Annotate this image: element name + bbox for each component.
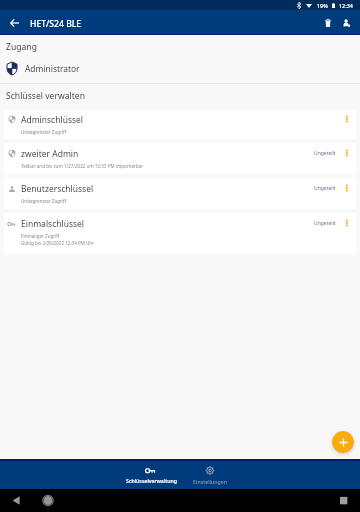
button[interactable]: More options xyxy=(341,183,351,193)
staticText: Ungeteilt xyxy=(314,185,336,192)
staticText: Unbegrenzter Zugriff xyxy=(21,129,67,135)
staticText: Teilbar und bis zum 1/27/2022 um 12:33 P… xyxy=(21,163,144,169)
staticText: Gültig bis 2/26/2022 12:34 PM Uhr xyxy=(21,240,95,246)
staticText: 19% xyxy=(317,2,328,9)
staticText: Ungeteilt xyxy=(314,150,336,157)
staticText: Einmalschlüssel xyxy=(21,218,85,230)
button[interactable]: More options xyxy=(341,148,351,158)
staticText: Schlüssel verwalten xyxy=(6,90,86,102)
button[interactable]: More options xyxy=(341,114,351,124)
button[interactable]: Delete xyxy=(318,12,337,34)
button[interactable]: Benutzerschlüssel xyxy=(4,178,356,209)
staticText: Adminschlüssel xyxy=(21,114,84,126)
button[interactable]: Account xyxy=(337,12,356,34)
staticText: Benutzerschlüssel xyxy=(21,183,94,195)
button[interactable]: Einstellungen xyxy=(189,461,231,489)
staticText: Ungeteilt xyxy=(314,220,336,227)
staticText: Schlüsselverwaltung xyxy=(126,477,177,484)
button[interactable]: zweiter Admin xyxy=(4,143,356,174)
button[interactable]: Administrator xyxy=(0,53,360,83)
button[interactable]: Adminschlüssel xyxy=(4,110,356,139)
staticText: Administrator xyxy=(25,63,80,74)
button[interactable]: Add key xyxy=(332,431,354,453)
staticText: HET/S24 BLE xyxy=(30,18,82,30)
staticText: 12:34 xyxy=(339,2,353,9)
staticText: Unbegrenzter Zugriff xyxy=(21,198,67,204)
button[interactable]: Einmalschlüssel xyxy=(4,213,356,254)
button[interactable]: More options xyxy=(341,218,351,228)
button[interactable]: Back xyxy=(4,12,25,33)
staticText: Einstellungen xyxy=(193,478,227,485)
staticText: zweiter Admin xyxy=(21,148,79,160)
staticText: Zugang xyxy=(6,41,37,53)
button[interactable]: Schlüsselverwaltung xyxy=(122,461,181,489)
staticText: Einmaliger Zugriff xyxy=(21,233,60,239)
